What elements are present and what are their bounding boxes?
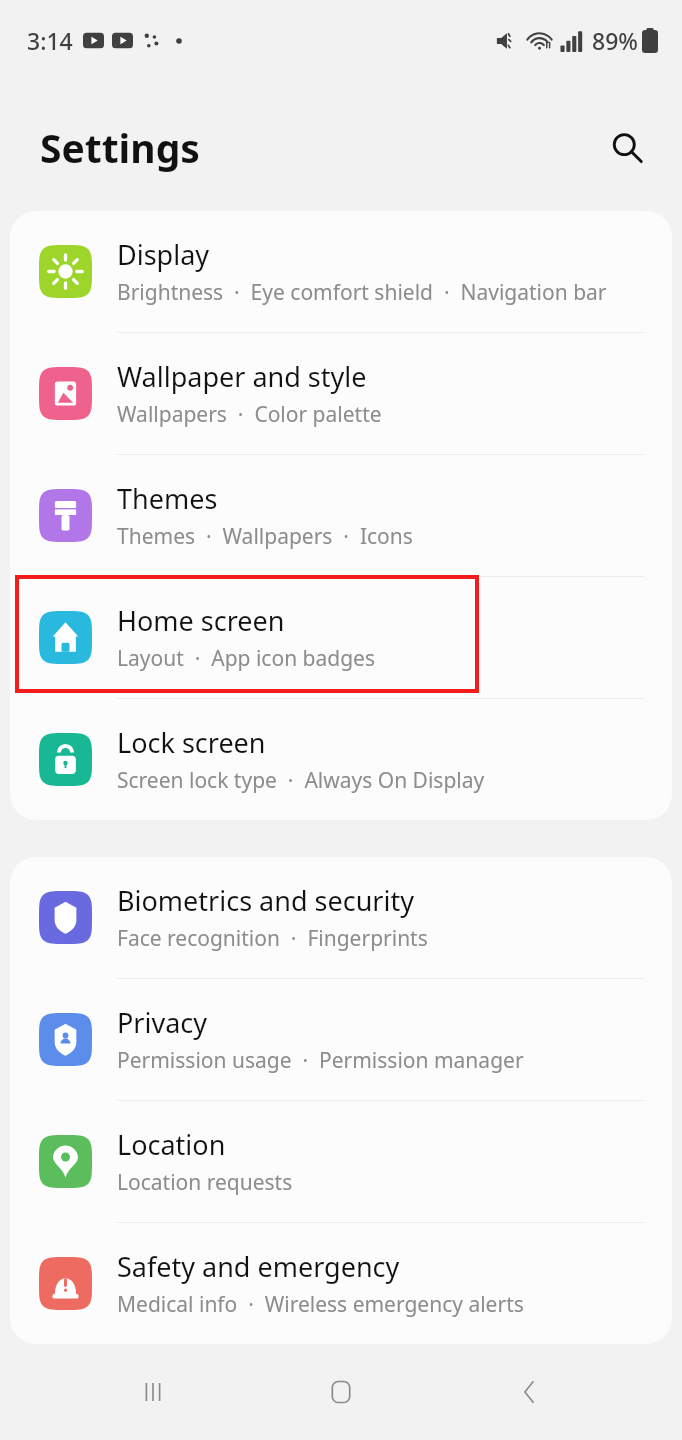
staticText: Safety and emergency bbox=[117, 1248, 400, 1285]
staticText: Wallpaper and style bbox=[117, 358, 367, 395]
button[interactable]: Search bbox=[601, 122, 653, 174]
staticText: Wallpapers · Color palette bbox=[117, 400, 382, 429]
button[interactable]: Home screen bbox=[10, 577, 672, 698]
staticText: Display bbox=[117, 236, 210, 273]
staticText: Lock screen bbox=[117, 724, 266, 761]
staticText: Layout · App icon badges bbox=[117, 644, 376, 673]
button[interactable]: Wallpaper and style bbox=[10, 333, 672, 454]
staticText: 3:14 bbox=[27, 25, 73, 56]
button[interactable]: Privacy bbox=[10, 979, 672, 1100]
staticText: Location requests bbox=[117, 1168, 293, 1197]
staticText: Themes bbox=[117, 480, 218, 517]
staticText: Medical info · Wireless emergency alerts bbox=[117, 1290, 524, 1319]
button[interactable]: Lock screen bbox=[10, 699, 672, 820]
staticText: Screen lock type · Always On Display bbox=[117, 766, 485, 795]
staticText: Biometrics and security bbox=[117, 882, 414, 919]
staticText: Home screen bbox=[117, 602, 285, 639]
button[interactable]: Home bbox=[305, 1356, 377, 1428]
button[interactable]: Biometrics and security bbox=[10, 857, 672, 978]
staticText: Brightness · Eye comfort shield · Naviga… bbox=[117, 278, 607, 307]
staticText: Location bbox=[117, 1126, 226, 1163]
button[interactable]: Themes bbox=[10, 455, 672, 576]
staticText: 89% bbox=[592, 25, 638, 56]
button[interactable]: Location bbox=[10, 1101, 672, 1222]
staticText: Privacy bbox=[117, 1004, 208, 1041]
button[interactable]: Safety and emergency bbox=[10, 1223, 672, 1344]
staticText: Face recognition · Fingerprints bbox=[117, 924, 428, 953]
button[interactable]: Back bbox=[494, 1356, 566, 1428]
button[interactable]: Display bbox=[10, 211, 672, 332]
button[interactable]: Recent apps bbox=[117, 1356, 189, 1428]
staticText: Permission usage · Permission manager bbox=[117, 1046, 524, 1075]
staticText: Settings bbox=[40, 121, 200, 174]
staticText: Themes · Wallpapers · Icons bbox=[117, 522, 413, 551]
